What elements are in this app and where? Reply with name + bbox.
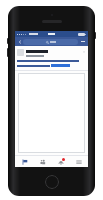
button[interactable]: More — [70, 156, 88, 167]
button[interactable]: Notifications — [52, 156, 70, 167]
button[interactable]: Friends — [34, 156, 52, 167]
button[interactable]: More options — [80, 37, 86, 46]
button[interactable] — [18, 73, 85, 153]
button[interactable] — [23, 39, 78, 45]
button[interactable]: Post options — [15, 46, 88, 57]
button[interactable]: Post options — [81, 49, 86, 54]
button[interactable]: News Feed — [15, 156, 34, 167]
button[interactable]: Back — [17, 37, 23, 46]
